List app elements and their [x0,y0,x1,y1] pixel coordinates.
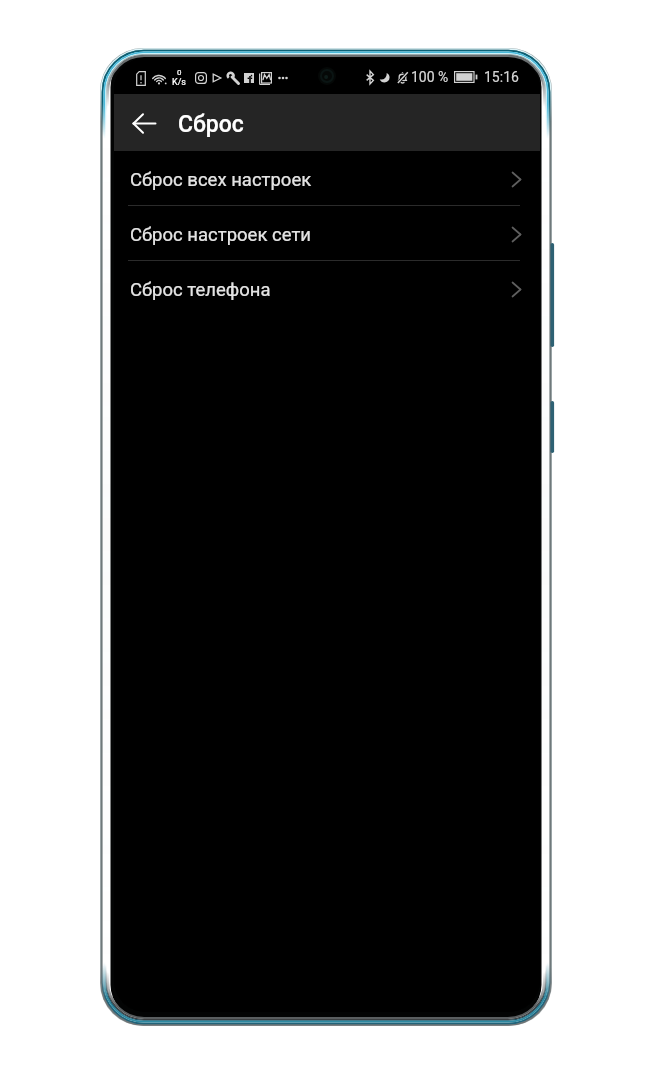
staticText: Сброс настроек сети [130,224,311,246]
staticText: Сброс [178,111,244,138]
staticText: Сброс всех настроек [130,169,312,191]
button[interactable]: Сброс телефона [114,261,540,315]
staticText: K/s [172,77,187,88]
staticText: 0 [177,68,182,77]
button[interactable]: Back [118,97,170,149]
staticText: 100 % [411,69,449,85]
staticText: Сброс телефона [130,279,271,301]
button[interactable]: Сброс всех настроек [114,151,540,205]
button[interactable]: Сброс настроек сети [114,206,540,260]
staticText: 15:16 [484,69,519,85]
